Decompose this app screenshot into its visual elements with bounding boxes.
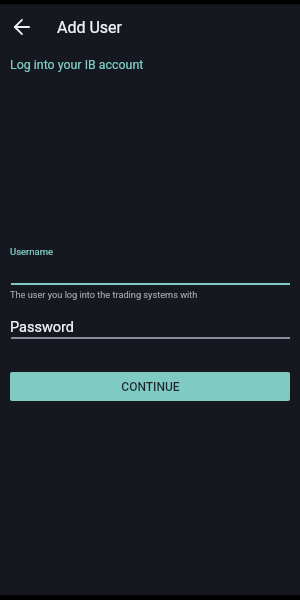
staticText: Password [10,319,75,336]
staticText: Add User [57,18,122,37]
button[interactable]: Username [10,240,290,285]
button[interactable]: Password [10,312,290,339]
staticText: The user you log into the trading system… [10,289,198,300]
button[interactable]: Navigate up [6,11,38,43]
button[interactable]: CONTINUE [10,372,290,401]
staticText: CONTINUE [121,380,180,394]
staticText: Username [10,246,54,257]
staticText: Log into your IB account [10,57,144,72]
